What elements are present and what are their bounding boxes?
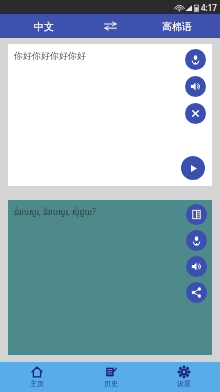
staticText: 历史 (104, 379, 118, 388)
button[interactable]: 中文 (0, 14, 87, 38)
button[interactable]: Voice input (185, 49, 206, 70)
staticText: 设置 (177, 379, 191, 388)
button[interactable]: Speak (186, 256, 207, 277)
button[interactable]: Translate (181, 156, 205, 180)
button[interactable]: Voice input (186, 230, 207, 251)
button[interactable]: Clear (185, 103, 206, 124)
button[interactable]: Swap languages (87, 14, 133, 38)
staticText: ជំរាបសួរ, ជំរាបសួរ, សុំជួយ? (14, 206, 96, 217)
staticText: 4:17 (201, 2, 217, 13)
button[interactable]: 设置 (147, 362, 220, 392)
staticText: 主页 (30, 379, 44, 388)
button[interactable]: 主页 (0, 362, 74, 392)
button[interactable]: Speak (185, 76, 206, 97)
staticText: 高棉语 (162, 20, 192, 33)
button[interactable]: Copy (186, 204, 207, 225)
button[interactable]: 高棉语 (133, 14, 220, 38)
staticText: 中文 (34, 20, 54, 33)
staticText: 你好你好你好你好 (14, 50, 86, 61)
button[interactable]: Share (186, 282, 207, 303)
button[interactable]: 历史 (74, 362, 147, 392)
